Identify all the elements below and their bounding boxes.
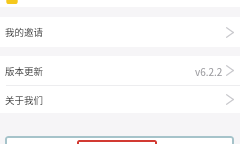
other: Open — [226, 94, 234, 105]
staticText: 关于我们 — [5, 93, 44, 107]
button[interactable]: 我的邀请 — [0, 17, 240, 47]
button[interactable]: 关于我们 — [0, 86, 240, 113]
button[interactable]: 版本更新 — [0, 56, 240, 85]
button[interactable] — [5, 136, 234, 144]
staticText: 我的邀请 — [5, 25, 44, 39]
staticText: 版本更新 — [5, 64, 44, 78]
staticText: v6.2.2 — [195, 64, 223, 78]
button[interactable] — [0, 0, 240, 7]
button[interactable] — [77, 140, 157, 144]
other: Open — [226, 27, 234, 38]
other: Open — [226, 65, 234, 76]
